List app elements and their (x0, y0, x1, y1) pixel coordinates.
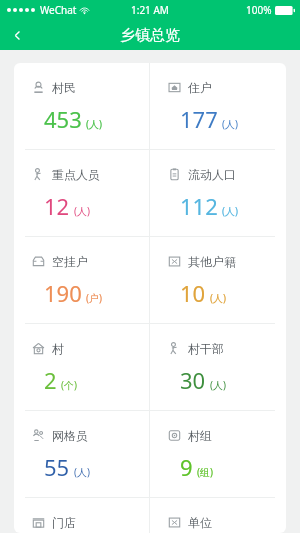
staticText: 村干部 (188, 341, 224, 356)
staticText: (人) (210, 378, 226, 392)
staticText: 30 (180, 365, 206, 395)
staticText: 其他户籍 (188, 254, 236, 269)
staticText: 10 (180, 278, 206, 308)
button[interactable]: 网格员 (14, 411, 149, 497)
staticText: 村民 (52, 80, 76, 95)
staticText: 9 (180, 452, 193, 482)
staticText: 村组 (188, 428, 212, 443)
staticText: 单位 (188, 515, 212, 530)
staticText: 100% (246, 3, 272, 17)
button[interactable]: 村组 (150, 411, 286, 497)
staticText: 12 (44, 191, 70, 221)
staticText: 177 (180, 104, 218, 134)
staticText: 村 (52, 341, 64, 356)
button[interactable]: 村 (14, 324, 149, 410)
staticText: 1:21 AM (131, 3, 169, 17)
staticText: 空挂户 (52, 254, 88, 269)
staticText: 55 (44, 452, 70, 482)
staticText: 2 (44, 365, 57, 395)
button[interactable]: Back (0, 20, 34, 50)
staticText: (人) (222, 117, 238, 131)
staticText: 流动人口 (188, 167, 236, 182)
staticText: 453 (44, 104, 82, 134)
staticText: 乡镇总览 (120, 26, 180, 45)
button[interactable]: 空挂户 (14, 237, 149, 323)
staticText: WeChat (40, 3, 77, 17)
staticText: 网格员 (52, 428, 88, 443)
button[interactable]: 其他户籍 (150, 237, 286, 323)
button[interactable]: 住户 (150, 63, 286, 149)
staticText: (户) (86, 291, 102, 305)
button[interactable]: 流动人口 (150, 150, 286, 236)
button[interactable]: 村民 (14, 63, 149, 149)
staticText: (组) (197, 465, 213, 479)
staticText: (人) (74, 204, 90, 218)
button[interactable]: 村干部 (150, 324, 286, 410)
staticText: (人) (86, 117, 102, 131)
staticText: 住户 (188, 80, 212, 95)
staticText: 门店 (52, 515, 76, 530)
staticText: (人) (210, 291, 226, 305)
staticText: (人) (74, 465, 90, 479)
button[interactable]: 单位 (150, 498, 286, 533)
staticText: (个) (61, 378, 77, 392)
staticText: 112 (180, 191, 218, 221)
staticText: (人) (222, 204, 238, 218)
staticText: 重点人员 (52, 167, 100, 182)
button[interactable]: 重点人员 (14, 150, 149, 236)
button[interactable]: 门店 (14, 498, 149, 533)
staticText: 190 (44, 278, 82, 308)
